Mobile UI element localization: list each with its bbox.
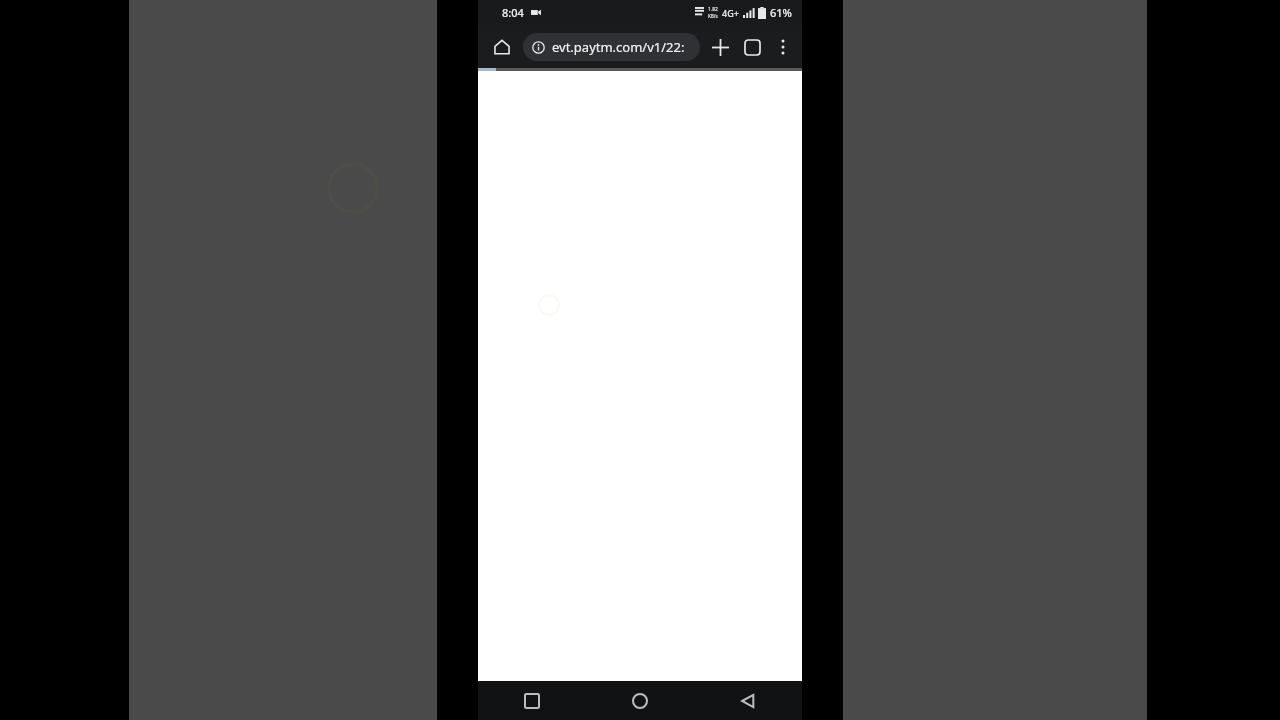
- button[interactable]: New tab: [704, 31, 736, 63]
- staticText: evt.paytm.com/v1/22:: [552, 38, 685, 56]
- button[interactable]: evt.paytm.com/v1/22:: [523, 33, 700, 61]
- button[interactable]: Recent apps: [478, 681, 586, 720]
- button[interactable]: More options: [768, 32, 798, 62]
- button[interactable]: Home: [487, 32, 517, 62]
- button[interactable]: Back: [694, 681, 802, 720]
- staticText: 61%: [770, 5, 792, 20]
- staticText: 8:04: [502, 5, 524, 20]
- staticText: 1.82: [708, 6, 718, 13]
- staticText: 4G+: [722, 7, 739, 19]
- button[interactable]: Tabs: [736, 31, 768, 63]
- button[interactable]: Home: [586, 681, 694, 720]
- staticText: KB/s: [708, 13, 718, 19]
